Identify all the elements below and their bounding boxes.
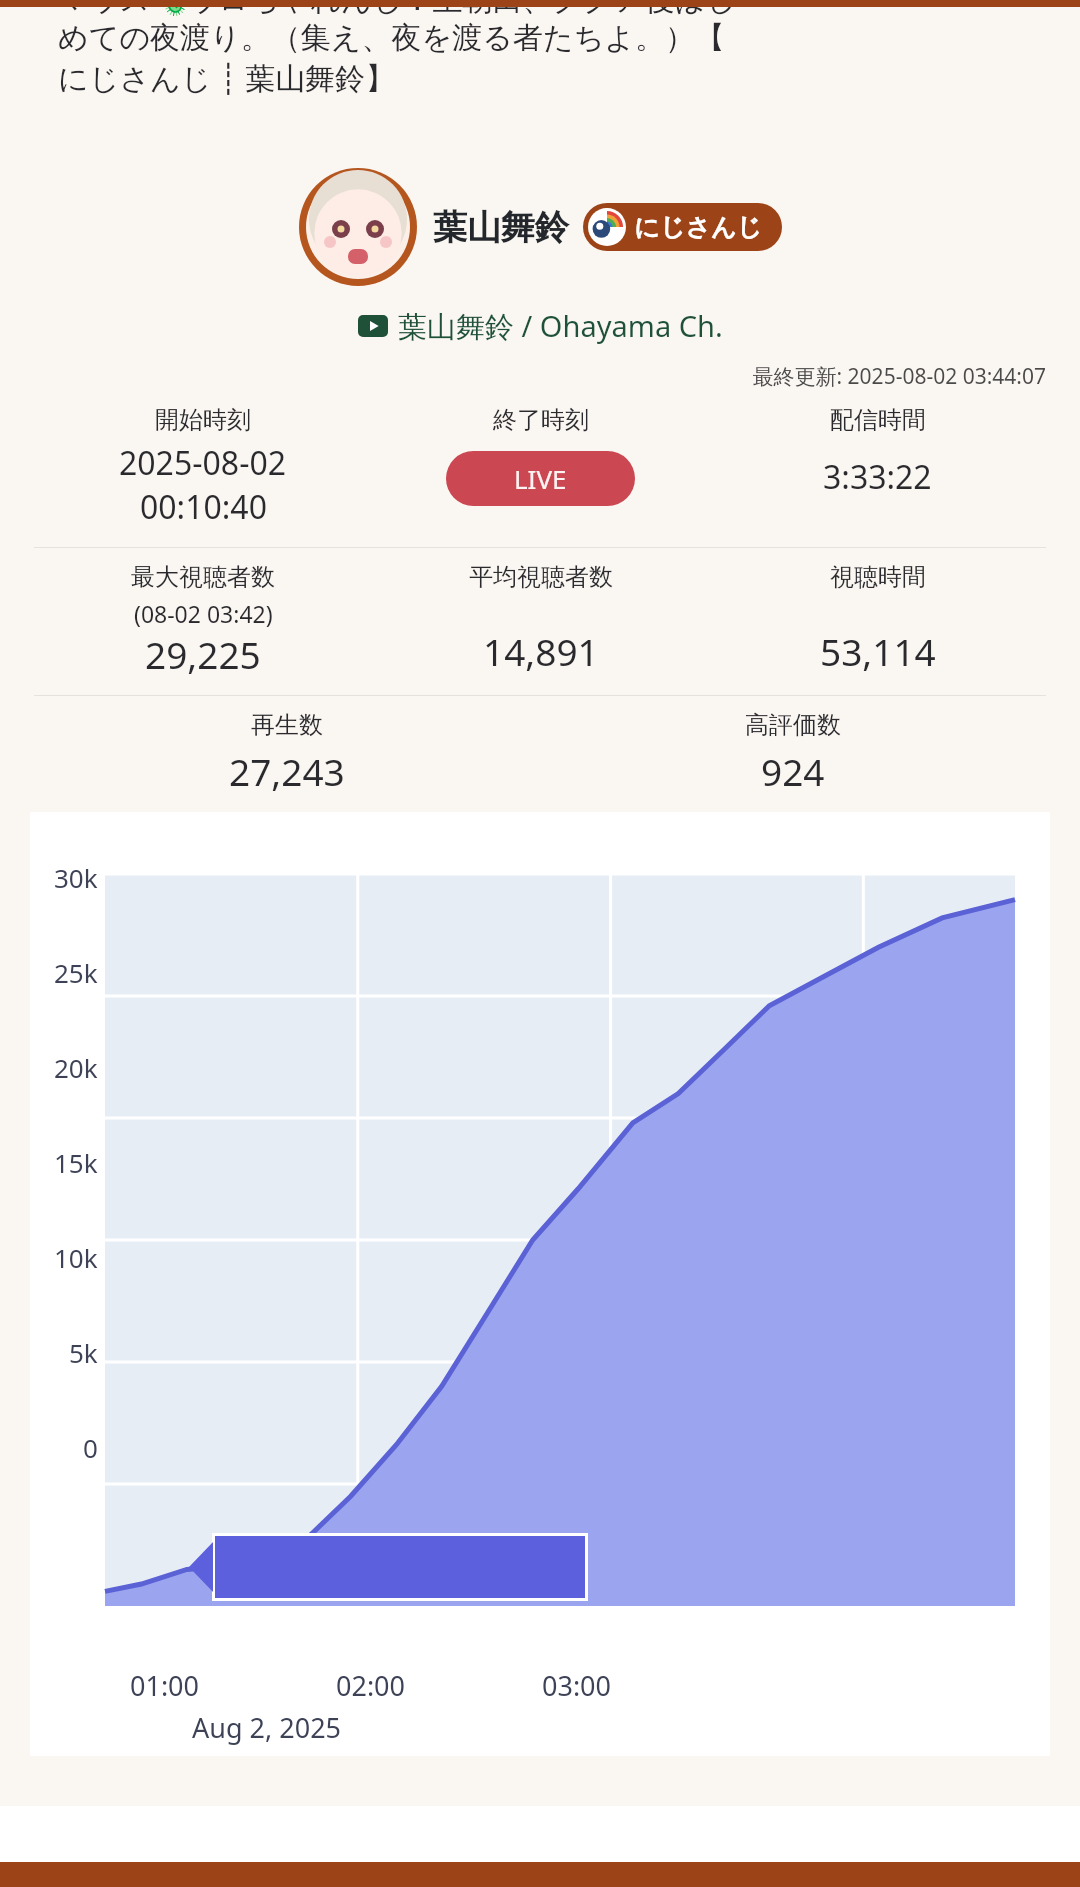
staticText: 00:10:40: [140, 485, 267, 529]
button[interactable]: LIVE: [446, 451, 635, 506]
staticText: 01:00: [130, 1667, 200, 1704]
staticText: 30k: [54, 860, 98, 895]
staticText: 2025-08-02: [119, 441, 287, 485]
staticText: 27,243: [229, 746, 345, 796]
button[interactable]: 視聴時間: [709, 562, 1046, 676]
staticText: にじさんじ ┊ 葉山舞鈴】: [58, 57, 396, 98]
staticText: 0: [83, 1430, 98, 1465]
staticText: 配信時間: [830, 405, 926, 435]
button[interactable]: YouTube: [0, 306, 1080, 346]
button[interactable]: 高評価数: [540, 710, 1046, 796]
staticText: マウス🦠ウロちゃれんじ：王朝田、ククア後はじ: [58, 7, 736, 19]
staticText: 開始時刻: [155, 405, 251, 435]
staticText: 葉山舞鈴: [433, 206, 569, 249]
other: Channel avatar: [299, 168, 417, 286]
button[interactable]: 30k: [30, 812, 1050, 1756]
staticText: LIVE: [514, 461, 567, 496]
button[interactable]: にじさんじ: [583, 203, 782, 251]
staticText: 10k: [54, 1240, 98, 1275]
staticText: 3:33:22: [823, 455, 932, 499]
button[interactable]: 開始時刻: [34, 405, 372, 529]
button[interactable]: 平均視聴者数: [372, 562, 709, 676]
staticText: 平均視聴者数: [469, 562, 613, 592]
staticText: 02:00: [336, 1667, 406, 1704]
button[interactable]: 最大視聴者数: [34, 562, 372, 679]
button[interactable]: 再生数: [34, 710, 540, 796]
staticText: 29,225: [145, 629, 261, 679]
button[interactable]: 配信時間: [709, 405, 1046, 499]
staticText: (08-02 03:42): [134, 598, 273, 629]
staticText: 再生数: [251, 710, 323, 740]
button[interactable]: Channel avatar: [0, 168, 1080, 286]
staticText: 03:00: [542, 1667, 612, 1704]
staticText: 高評価数: [745, 710, 841, 740]
staticText: 最大視聴者数: [131, 562, 275, 592]
staticText: 葉山舞鈴 / Ohayama Ch.: [398, 306, 723, 346]
button[interactable]: 終了時刻: [372, 405, 709, 506]
other: YouTube: [358, 315, 388, 337]
staticText: 終了時刻: [493, 405, 589, 435]
staticText: 15k: [54, 1145, 98, 1180]
staticText: 53,114: [820, 626, 936, 676]
staticText: 14,891: [483, 626, 599, 676]
staticText: 20k: [54, 1050, 98, 1085]
staticText: 924: [761, 746, 825, 796]
staticText: めての夜渡り。（集え、夜を渡る者たちよ。）【: [58, 19, 726, 57]
staticText: 25k: [54, 955, 98, 990]
staticText: 最終更新: 2025-08-02 03:44:07: [0, 362, 1046, 391]
staticText: にじさんじ: [634, 212, 762, 243]
staticText: 視聴時間: [830, 562, 926, 592]
staticText: Aug 2, 2025: [192, 1709, 342, 1746]
staticText: 5k: [69, 1335, 98, 1370]
